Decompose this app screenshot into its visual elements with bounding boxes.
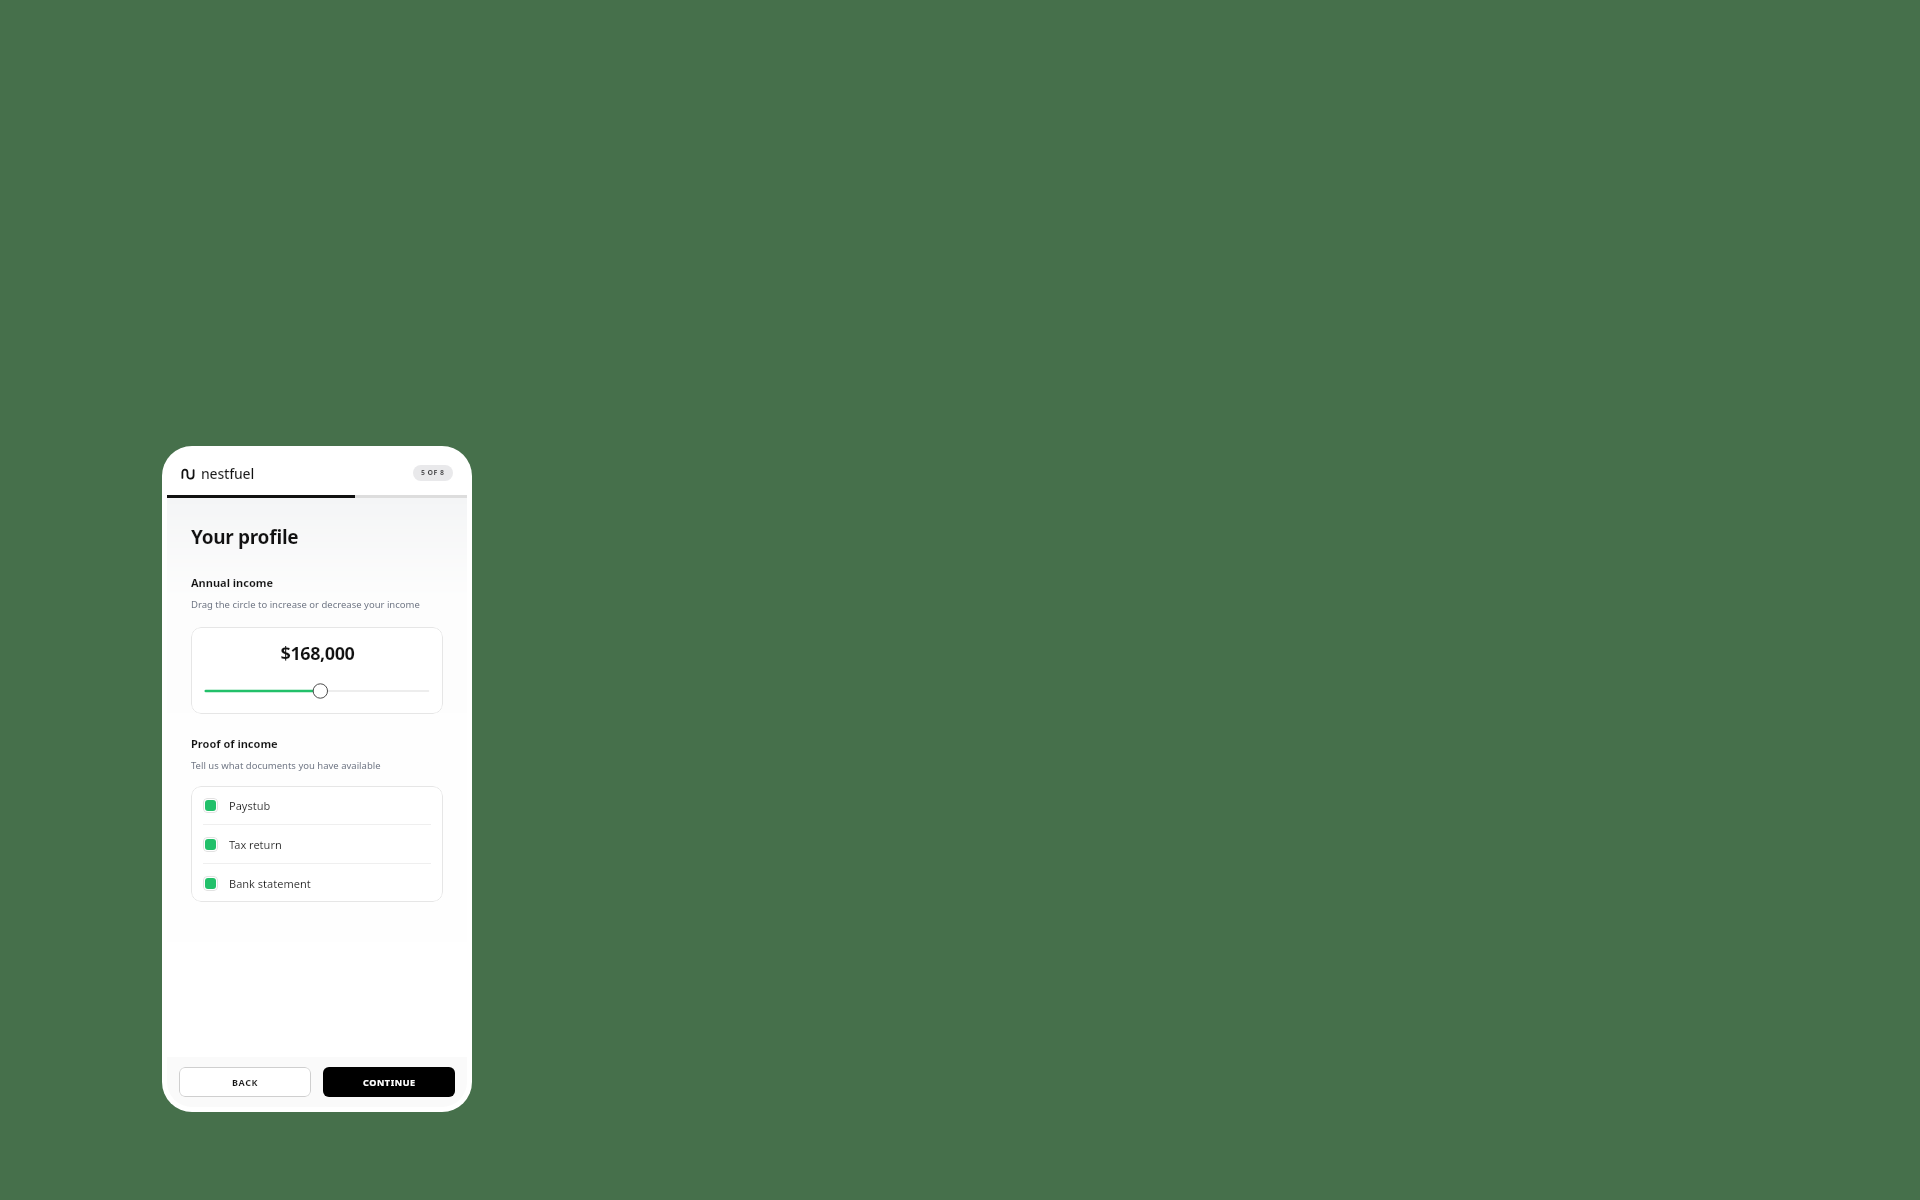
staticText: 5 OF 8 (421, 468, 445, 478)
button[interactable]: nestfuel home (181, 464, 254, 483)
staticText: Your profile (191, 524, 299, 550)
button[interactable]: Tax return (191, 825, 443, 863)
button[interactable]: BACK (179, 1067, 311, 1097)
staticText: Proof of income (191, 736, 278, 751)
staticText: nestfuel (201, 464, 254, 483)
staticText: Tell us what documents you have availabl… (191, 759, 381, 772)
button[interactable]: Bank statement (191, 864, 443, 902)
staticText: Drag the circle to increase or decrease … (191, 598, 420, 611)
button[interactable]: Annual income slider (205, 682, 429, 700)
button[interactable]: $168,000 (191, 627, 443, 714)
button[interactable]: CONTINUE (323, 1067, 455, 1097)
staticText: CONTINUE (363, 1076, 416, 1088)
staticText: Bank statement (229, 876, 311, 891)
staticText: Tax return (229, 837, 282, 852)
staticText: Paystub (229, 798, 271, 813)
button[interactable]: 5 OF 8 (413, 465, 453, 481)
button[interactable]: Paystub (191, 786, 443, 824)
staticText: $168,000 (280, 641, 355, 666)
staticText: BACK (232, 1076, 259, 1088)
staticText: Annual income (191, 575, 274, 590)
